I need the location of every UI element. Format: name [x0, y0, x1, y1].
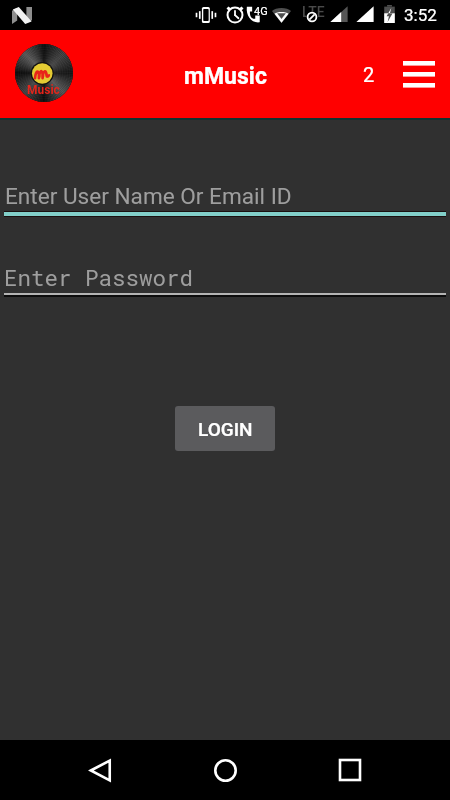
button[interactable]: Recents — [326, 746, 374, 794]
button[interactable]: Enter Password — [4, 258, 446, 297]
button[interactable]: Menu — [398, 54, 440, 98]
staticText: Enter Password — [4, 262, 194, 292]
staticText: mMusic — [184, 63, 267, 90]
staticText: LTE — [302, 4, 325, 20]
button[interactable]: Enter User Name Or Email ID — [4, 176, 446, 217]
staticText: 2 — [363, 63, 375, 86]
staticText: LOGIN — [198, 418, 253, 440]
staticText: 3:52 — [404, 5, 437, 25]
staticText: Music — [27, 83, 60, 97]
button[interactable]: Home — [201, 746, 249, 794]
button[interactable]: Back — [76, 746, 124, 794]
staticText: Enter User Name Or Email ID — [5, 183, 292, 209]
button[interactable]: LOGIN — [175, 406, 275, 451]
staticText: 4G — [254, 5, 268, 18]
